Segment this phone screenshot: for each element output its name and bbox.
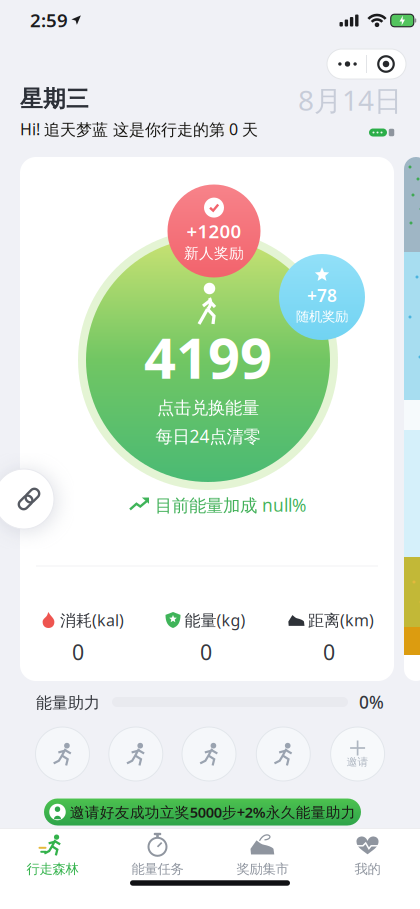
staticText: 邀请好友成功立奖5000步+2%永久能量助力 (70, 802, 356, 822)
staticText: 能量(kg) (184, 609, 245, 631)
staticText: 我的 (354, 861, 380, 877)
staticText: 奖励集市 (236, 861, 288, 877)
button[interactable] (20, 157, 394, 681)
staticText: 每日24点清零 (155, 424, 260, 447)
staticText: 能量任务 (131, 861, 183, 877)
button[interactable]: 4199 (78, 230, 338, 490)
button[interactable]: +1200 (167, 184, 260, 277)
staticText: +78 (307, 284, 337, 307)
button[interactable]: 我的 (319, 830, 415, 880)
staticText: 随机奖励 (296, 308, 348, 325)
staticText: 0 (72, 638, 84, 666)
button[interactable]: 邀请 (331, 727, 385, 781)
staticText: 8月14日 (298, 81, 402, 119)
staticText: 4199 (144, 320, 272, 394)
staticText: 目前能量加成 null% (155, 493, 306, 516)
button[interactable]: +78 (279, 254, 365, 340)
staticText: 0% (359, 690, 384, 713)
button[interactable] (35, 727, 89, 781)
button[interactable] (256, 727, 310, 781)
staticText: Hi! 追天梦蓝 这是你行走的第 0 天 (20, 118, 258, 140)
button[interactable] (0, 469, 54, 529)
staticText: 0 (200, 638, 212, 666)
staticText: +1200 (186, 219, 241, 243)
staticText: 邀请 (347, 755, 369, 768)
staticText: 距离(km) (308, 609, 374, 631)
staticText: 点击兑换能量 (157, 397, 259, 419)
button[interactable]: 行走森林 (4, 830, 100, 880)
staticText: 消耗(kal) (60, 609, 124, 631)
staticText: 星期三 (20, 85, 89, 113)
staticText: 新人奖励 (184, 244, 244, 262)
button[interactable] (327, 49, 406, 79)
button[interactable] (109, 727, 163, 781)
staticText: 0 (323, 638, 335, 666)
staticText: 2:59 (30, 8, 68, 32)
staticText: 行走森林 (26, 861, 78, 877)
button[interactable]: 奖励集市 (214, 830, 310, 880)
staticText: 能量助力 (36, 693, 100, 713)
button[interactable]: 邀请好友成功立奖5000步+2%永久能量助力 (44, 798, 361, 825)
button[interactable]: 能量任务 (109, 830, 205, 880)
button[interactable] (182, 727, 236, 781)
